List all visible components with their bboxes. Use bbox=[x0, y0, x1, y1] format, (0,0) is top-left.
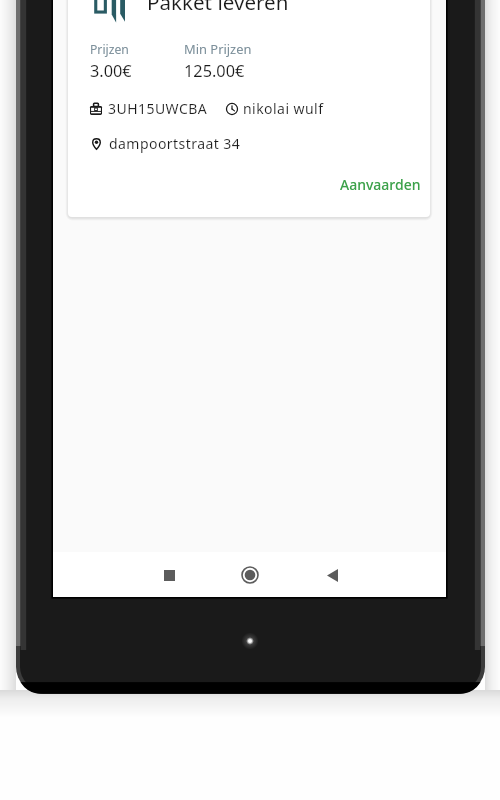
button[interactable]: Aanvaarden bbox=[330, 170, 430, 199]
staticText: dampoortstraat 34 bbox=[109, 134, 241, 153]
staticText: 3.00€ bbox=[90, 60, 132, 82]
button[interactable]: Address dampoortstraat 34 bbox=[92, 134, 241, 153]
button[interactable]: Pakket leveren bbox=[68, 0, 430, 217]
staticText: nikolai wulf bbox=[243, 99, 324, 118]
staticText: Aanvaarden bbox=[340, 175, 421, 194]
button[interactable]: Recent apps bbox=[147, 553, 191, 597]
staticText: 3UH15UWCBA bbox=[108, 99, 208, 118]
staticText: Pakket leveren bbox=[147, 0, 289, 16]
staticText: 125.00€ bbox=[184, 60, 245, 82]
button[interactable]: Home bbox=[228, 553, 272, 597]
staticText: Prijzen bbox=[90, 41, 129, 58]
button[interactable]: Order 3UH15UWCBA, nikolai wulf bbox=[90, 99, 324, 118]
button[interactable]: Back bbox=[310, 553, 354, 597]
staticText: Min Prijzen bbox=[184, 40, 252, 58]
